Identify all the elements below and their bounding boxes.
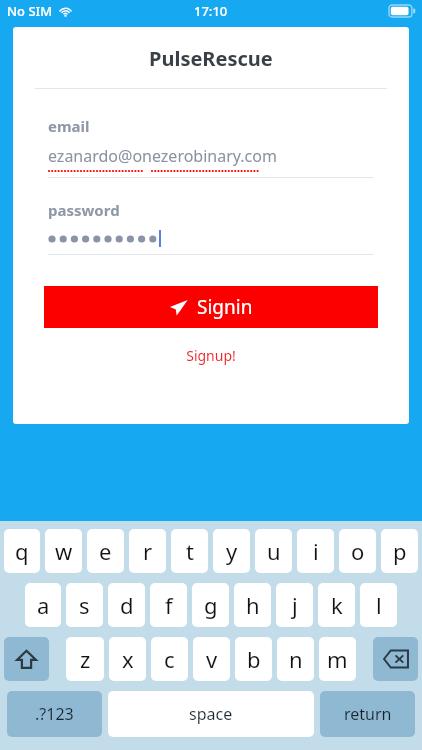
button[interactable]: h <box>234 583 271 627</box>
button[interactable]: k <box>318 583 355 627</box>
button[interactable]: g <box>192 583 229 627</box>
staticText: t <box>186 536 194 566</box>
staticText: Signup! <box>186 346 236 365</box>
staticText: j <box>292 590 298 620</box>
button[interactable]: Signup! <box>176 344 246 367</box>
staticText: Signin <box>197 294 253 320</box>
staticText: g <box>204 590 218 620</box>
button[interactable]: Backspace <box>373 637 418 681</box>
staticText: No SIM <box>7 2 53 20</box>
button[interactable]: m <box>319 637 356 681</box>
staticText: b <box>247 644 261 674</box>
button[interactable]: Signin <box>44 286 378 328</box>
staticText: s <box>79 590 90 620</box>
staticText: f <box>165 590 173 620</box>
staticText: c <box>164 644 175 674</box>
button[interactable]: l <box>360 583 397 627</box>
button[interactable]: i <box>297 529 334 573</box>
staticText: r <box>143 536 153 566</box>
button[interactable]: e <box>87 529 124 573</box>
staticText: return <box>344 703 392 725</box>
staticText: ezanardo@onezerobinary.com <box>48 145 277 167</box>
staticText: z <box>80 644 91 674</box>
staticText: p <box>393 536 407 566</box>
button[interactable]: r <box>129 529 166 573</box>
staticText: l <box>376 590 382 620</box>
button[interactable]: x <box>109 637 146 681</box>
button[interactable]: .?123 <box>7 691 102 737</box>
button[interactable]: q <box>4 529 40 573</box>
staticText: password <box>48 200 120 220</box>
staticText: 17:10 <box>194 2 228 20</box>
button[interactable]: a <box>25 583 61 627</box>
staticText: u <box>267 536 281 566</box>
staticText: .?123 <box>35 703 74 725</box>
button[interactable]: t <box>171 529 208 573</box>
staticText: y <box>226 536 238 566</box>
button[interactable]: return <box>320 691 415 737</box>
button[interactable]: f <box>150 583 187 627</box>
button[interactable]: o <box>339 529 376 573</box>
button[interactable]: space <box>108 691 314 737</box>
button[interactable]: u <box>255 529 292 573</box>
staticText: PulseRescue <box>149 45 273 72</box>
button[interactable]: d <box>108 583 145 627</box>
staticText: n <box>289 644 303 674</box>
button[interactable]: z <box>66 637 104 681</box>
staticText: a <box>37 590 50 620</box>
button[interactable]: Shift <box>4 637 49 681</box>
staticText: m <box>327 644 348 674</box>
staticText: w <box>55 536 73 566</box>
staticText: email <box>48 116 90 136</box>
button[interactable]: c <box>151 637 188 681</box>
staticText: e <box>99 536 112 566</box>
button[interactable]: b <box>235 637 272 681</box>
staticText: space <box>189 703 233 725</box>
button[interactable]: p <box>381 529 418 573</box>
staticText: i <box>313 536 319 566</box>
staticText: x <box>122 644 134 674</box>
staticText: o <box>351 536 365 566</box>
button[interactable]: w <box>45 529 82 573</box>
staticText: d <box>120 590 134 620</box>
staticText: h <box>246 590 260 620</box>
button[interactable]: j <box>276 583 313 627</box>
staticText: v <box>206 644 218 674</box>
button[interactable]: y <box>213 529 250 573</box>
staticText: k <box>331 590 343 620</box>
button[interactable]: v <box>193 637 230 681</box>
staticText: q <box>15 536 29 566</box>
button[interactable]: s <box>66 583 103 627</box>
button[interactable]: n <box>277 637 314 681</box>
